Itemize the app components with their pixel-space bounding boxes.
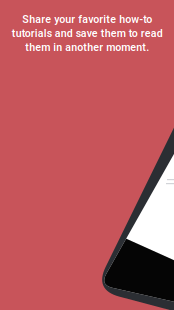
staticText: Share your favorite how-to tutorials and… bbox=[11, 13, 162, 53]
